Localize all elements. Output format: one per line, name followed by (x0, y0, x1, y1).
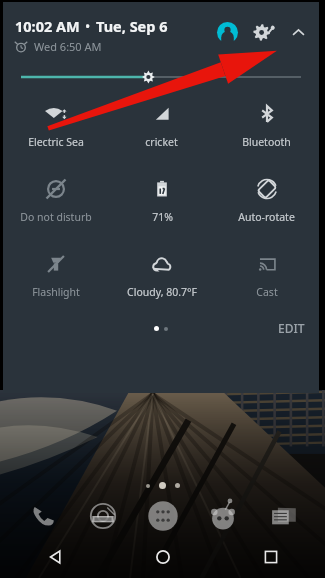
button[interactable]: 71% (109, 178, 214, 224)
button[interactable]: Home (109, 535, 217, 578)
staticText: Cloudy, 80.7°F (127, 285, 197, 299)
staticText: EDIT (278, 320, 305, 336)
button[interactable]: EDIT (278, 320, 305, 336)
button[interactable]: Reddit (193, 494, 253, 538)
button[interactable]: Back (0, 535, 109, 578)
button[interactable]: Brightness (3, 67, 319, 87)
button[interactable]: Collapse (285, 19, 311, 45)
staticText: Cast (256, 285, 278, 299)
staticText: 10:02 AM (15, 16, 80, 36)
staticText: Do not disturb (20, 210, 92, 224)
button[interactable]: User profile (213, 18, 241, 46)
button[interactable]: Bluetooth (214, 103, 319, 149)
staticText: cricket (145, 135, 178, 149)
button[interactable]: Cloudy, 80.7°F (109, 253, 214, 299)
button[interactable]: Flashlight (3, 253, 109, 299)
button[interactable]: Settings (249, 17, 279, 47)
button[interactable]: Recents (217, 535, 325, 578)
staticText: Bluetooth (242, 135, 291, 149)
staticText: 71% (152, 210, 173, 224)
button[interactable]: Auto-rotate (214, 178, 319, 224)
button[interactable]: Cast (214, 253, 319, 299)
staticText: Flashlight (32, 285, 80, 299)
button[interactable]: Apps (133, 494, 193, 538)
button[interactable]: News (253, 494, 313, 538)
staticText: • (85, 17, 91, 36)
staticText: Tue, Sep 6 (96, 16, 168, 36)
button[interactable]: Do not disturb (3, 178, 109, 224)
staticText: Auto-rotate (238, 210, 295, 224)
button[interactable]: Chrome Beta (73, 494, 133, 538)
button[interactable]: cricket (109, 103, 214, 149)
staticText: Wed 6:50 AM (34, 39, 102, 54)
staticText: Electric Sea (28, 135, 84, 149)
button[interactable]: Phone (12, 494, 73, 538)
button[interactable]: Electric Sea (3, 103, 109, 149)
